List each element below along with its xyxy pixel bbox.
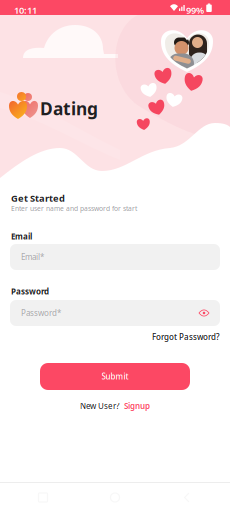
staticText: Forgot Password? [152,332,220,342]
staticText: Submit [101,371,128,382]
staticText: Dating [40,97,98,120]
staticText: Email* [21,252,44,262]
staticText: Password* [21,308,61,318]
staticText: Enter user name and password for start [11,204,137,213]
button[interactable]: Forgot Password? [150,331,220,343]
staticText: Password [11,286,49,297]
staticText: New User? [80,401,119,411]
staticText: 10:11 [14,4,37,16]
button[interactable]: Signup [124,401,150,411]
staticText: Signup [124,401,150,411]
staticText: Get Started [11,192,65,204]
staticText: 99% [186,4,204,16]
button[interactable]: Submit [40,363,190,390]
staticText: Email [11,231,32,242]
